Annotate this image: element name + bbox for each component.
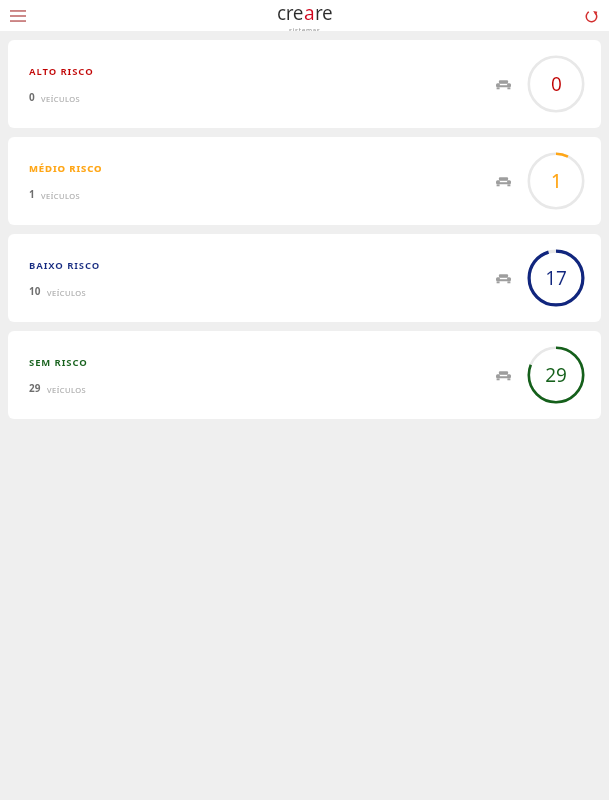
staticText: BAIXO RISCO: [29, 259, 101, 272]
staticText: VEÍCULOS: [41, 94, 81, 104]
staticText: a: [304, 0, 315, 26]
button[interactable]: ALTO RISCO: [8, 40, 601, 128]
staticText: 0: [29, 90, 35, 104]
button[interactable]: MÉDIO RISCO: [8, 137, 601, 225]
staticText: 29: [545, 362, 567, 388]
button[interactable]: BAIXO RISCO: [8, 234, 601, 322]
staticText: 1: [551, 168, 562, 194]
staticText: 1: [29, 187, 35, 201]
other: Vehicles: [496, 78, 511, 90]
staticText: VEÍCULOS: [47, 385, 87, 395]
staticText: 10: [29, 284, 41, 298]
staticText: MÉDIO RISCO: [29, 162, 103, 175]
button[interactable]: Menu: [6, 4, 30, 28]
staticText: cre: [277, 0, 304, 26]
staticText: ALTO RISCO: [29, 65, 94, 78]
staticText: VEÍCULOS: [41, 191, 81, 201]
staticText: re: [315, 0, 333, 26]
staticText: SEM RISCO: [29, 356, 88, 369]
button[interactable]: SEM RISCO: [8, 331, 601, 419]
staticText: VEÍCULOS: [47, 288, 87, 298]
staticText: sistemas: [289, 26, 321, 31]
other: Vehicles: [496, 369, 511, 381]
staticText: 29: [29, 381, 41, 395]
staticText: 17: [545, 265, 567, 291]
other: Vehicles: [496, 272, 511, 284]
staticText: 0: [551, 71, 562, 97]
other: Vehicles: [496, 175, 511, 187]
button[interactable]: Refresh: [579, 4, 603, 28]
